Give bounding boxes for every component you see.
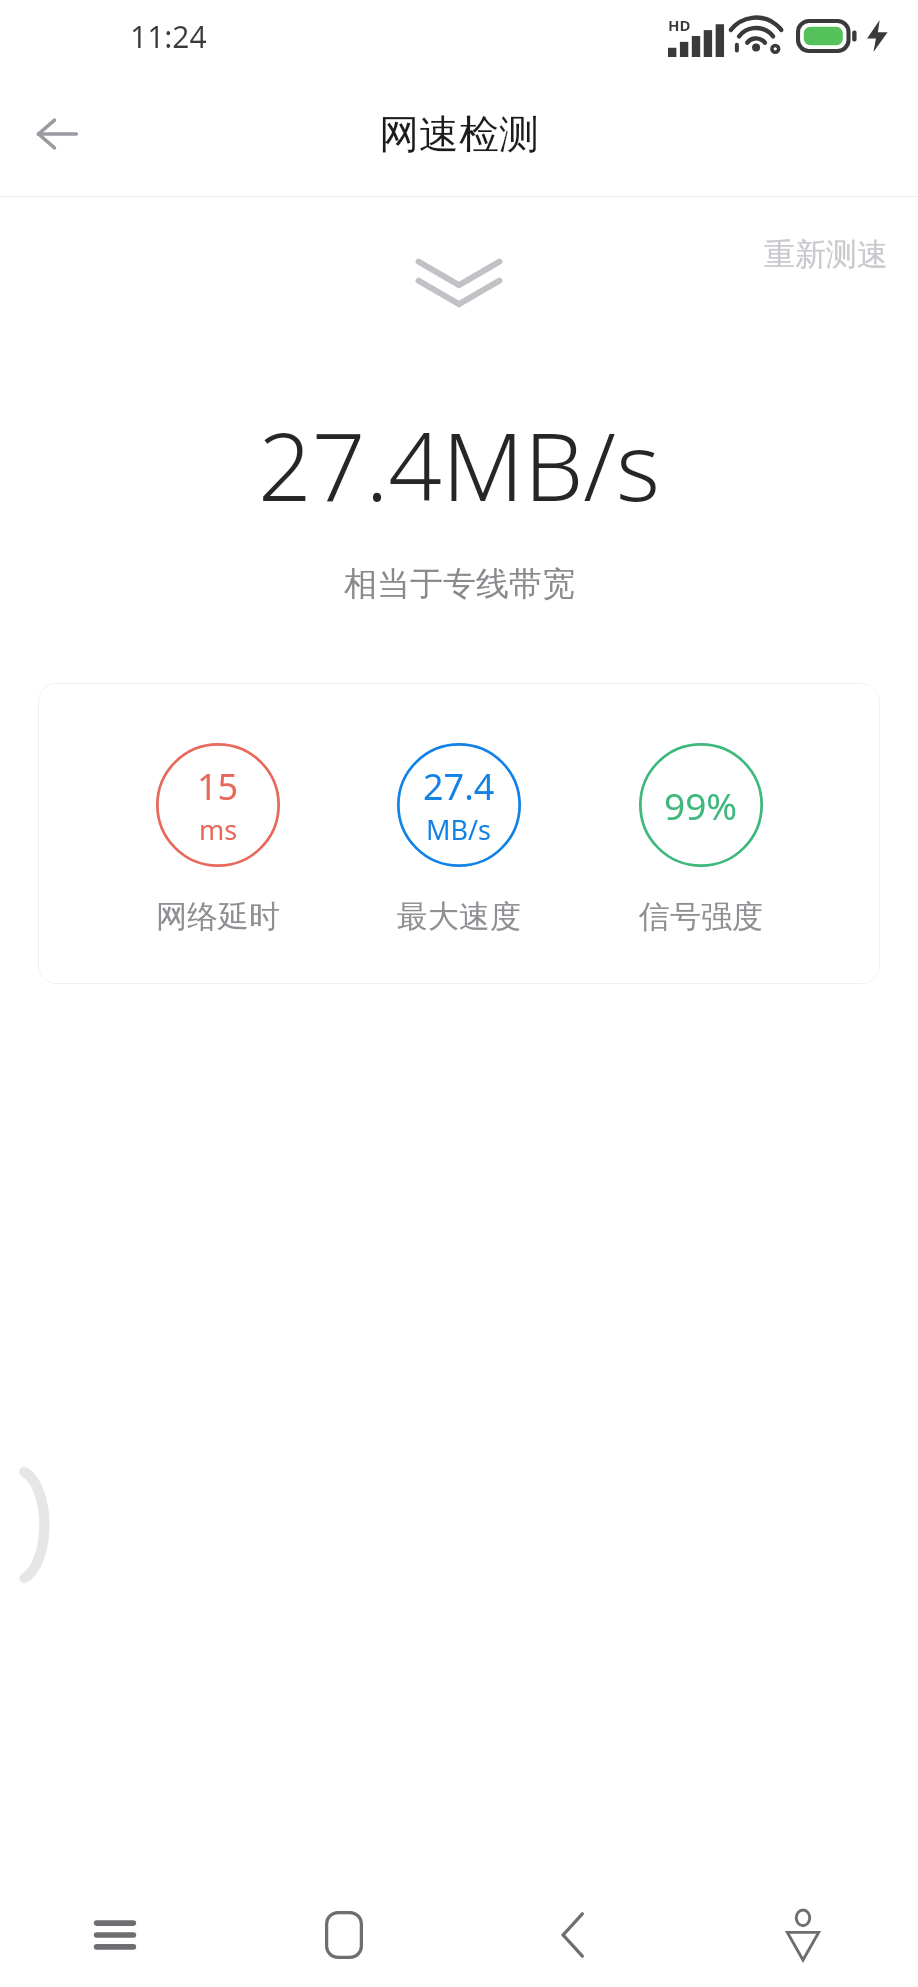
button[interactable]: Assistant	[688, 1883, 918, 1987]
staticText: 相当于专线带宽	[344, 563, 575, 605]
button[interactable]: Back	[18, 95, 96, 173]
staticText: 网络延时	[156, 897, 280, 936]
staticText: MB/s	[426, 811, 492, 848]
button[interactable]: 99%	[639, 743, 763, 936]
staticText: 27.4MB/s	[258, 401, 660, 529]
button[interactable]: Collapse	[404, 249, 514, 319]
staticText: 15	[197, 762, 239, 811]
button[interactable]: 27.4	[397, 743, 521, 936]
button[interactable]: Home	[229, 1883, 458, 1987]
staticText: 信号强度	[639, 897, 763, 936]
staticText: HD	[668, 15, 691, 35]
staticText: ms	[199, 811, 238, 848]
staticText: 99%	[664, 780, 738, 830]
staticText: 27.4	[423, 762, 495, 811]
button[interactable]: 15	[156, 743, 280, 936]
button[interactable]: 15	[38, 683, 880, 984]
button[interactable]: 重新测速	[750, 225, 902, 284]
button[interactable]: Back	[458, 1883, 688, 1987]
staticText: 重新测速	[764, 235, 888, 274]
staticText: 最大速度	[397, 897, 521, 936]
staticText: 11:24	[130, 16, 207, 57]
button[interactable]: Recent apps	[0, 1883, 229, 1987]
staticText: 网速检测	[379, 109, 539, 159]
